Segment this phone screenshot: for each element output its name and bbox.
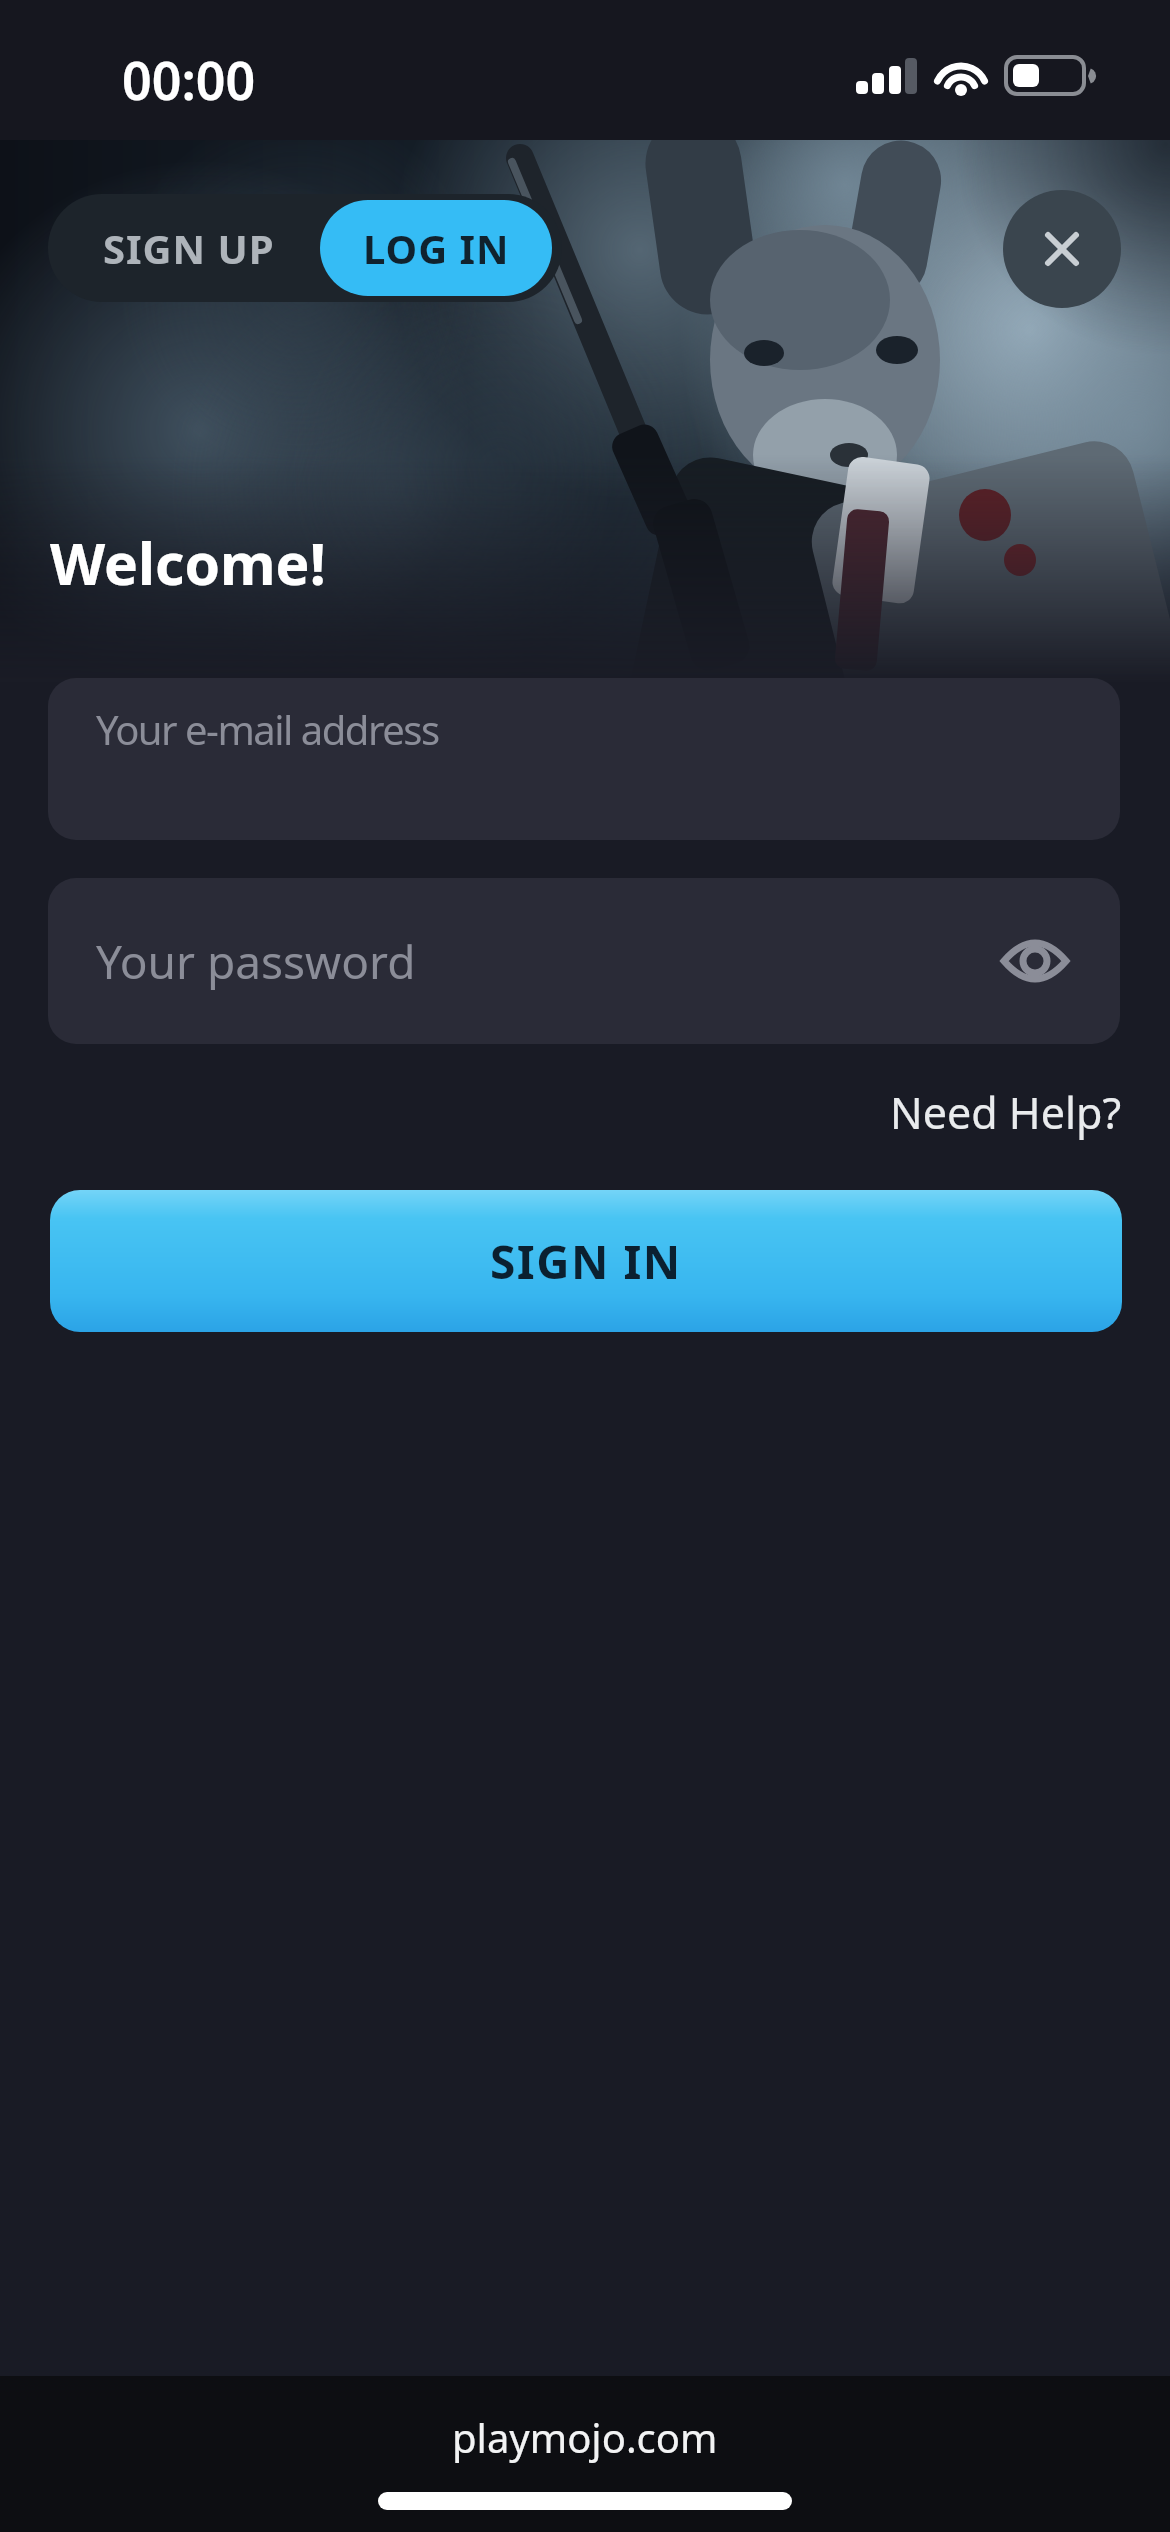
staticText: LOG IN: [363, 221, 510, 275]
staticText: Your e-mail address: [96, 702, 439, 756]
button[interactable]: SIGN IN: [50, 1190, 1122, 1332]
button[interactable]: [1003, 933, 1067, 989]
button[interactable]: LOG IN: [320, 200, 552, 296]
staticText: Your password: [96, 930, 416, 993]
button[interactable]: Your e-mail address: [48, 678, 1120, 840]
staticText: SIGN IN: [490, 1230, 682, 1293]
staticText: 00:00: [122, 44, 256, 115]
button[interactable]: Your password: [48, 878, 1120, 1044]
staticText: Welcome!: [50, 524, 326, 602]
staticText: SIGN UP: [103, 221, 275, 275]
button[interactable]: SIGN UP: [48, 194, 330, 302]
button[interactable]: [1003, 190, 1121, 308]
button[interactable]: Need Help?: [890, 1083, 1122, 1142]
staticText: playmojo.com: [452, 2410, 718, 2464]
